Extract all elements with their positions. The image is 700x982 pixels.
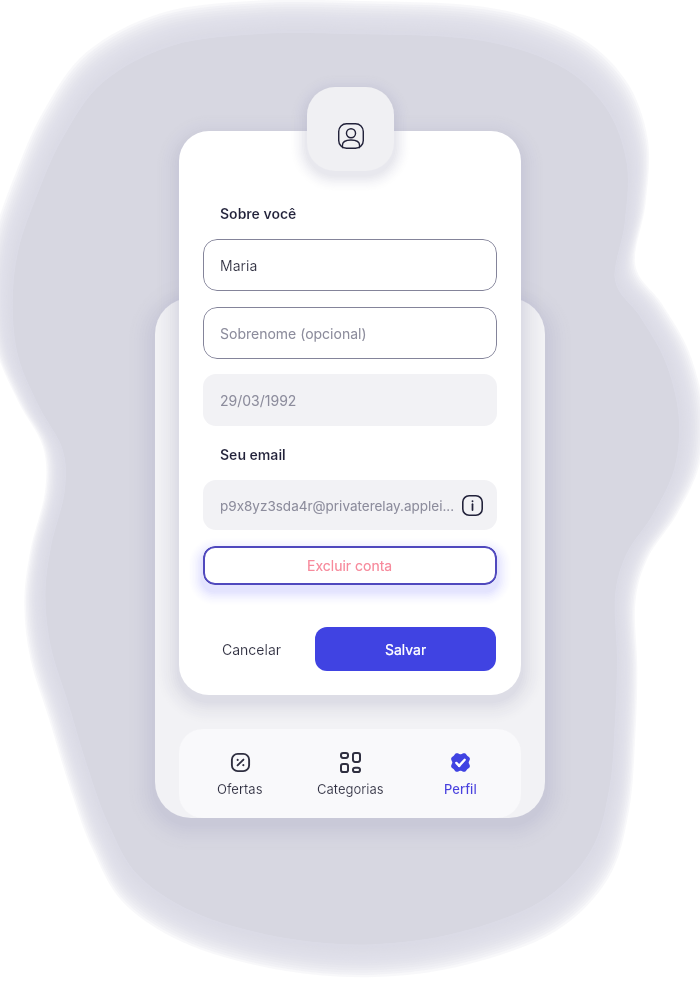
staticText: Perfil (444, 781, 477, 797)
button[interactable]: Salvar (315, 627, 496, 671)
button[interactable]: Sobrenome (opcional) (203, 307, 497, 359)
staticText: Categorias (317, 781, 384, 797)
button[interactable]: Cancelar (210, 628, 294, 670)
button[interactable]: Excluir conta (203, 546, 497, 585)
staticText: Cancelar (222, 641, 282, 658)
staticText: Sobrenome (opcional) (220, 325, 367, 342)
button[interactable]: Perfil (414, 747, 506, 801)
button[interactable]: Informações (462, 495, 483, 516)
button[interactable]: Maria (203, 239, 497, 291)
staticText: Salvar (385, 641, 427, 658)
button[interactable]: Ofertas (194, 747, 286, 801)
staticText: Maria (220, 257, 258, 274)
button[interactable]: Categorias (304, 747, 396, 801)
staticText: Seu email (220, 446, 286, 463)
staticText: Ofertas (217, 781, 263, 797)
staticText: p9x8yz3sda4r@privaterelay.applei... (220, 498, 462, 514)
staticText: Excluir conta (307, 557, 393, 574)
button[interactable]: 29/03/1992 (203, 374, 497, 426)
staticText: 29/03/1992 (220, 392, 297, 409)
staticText: Sobre você (220, 205, 297, 222)
button[interactable]: Foto de perfil (307, 87, 394, 171)
